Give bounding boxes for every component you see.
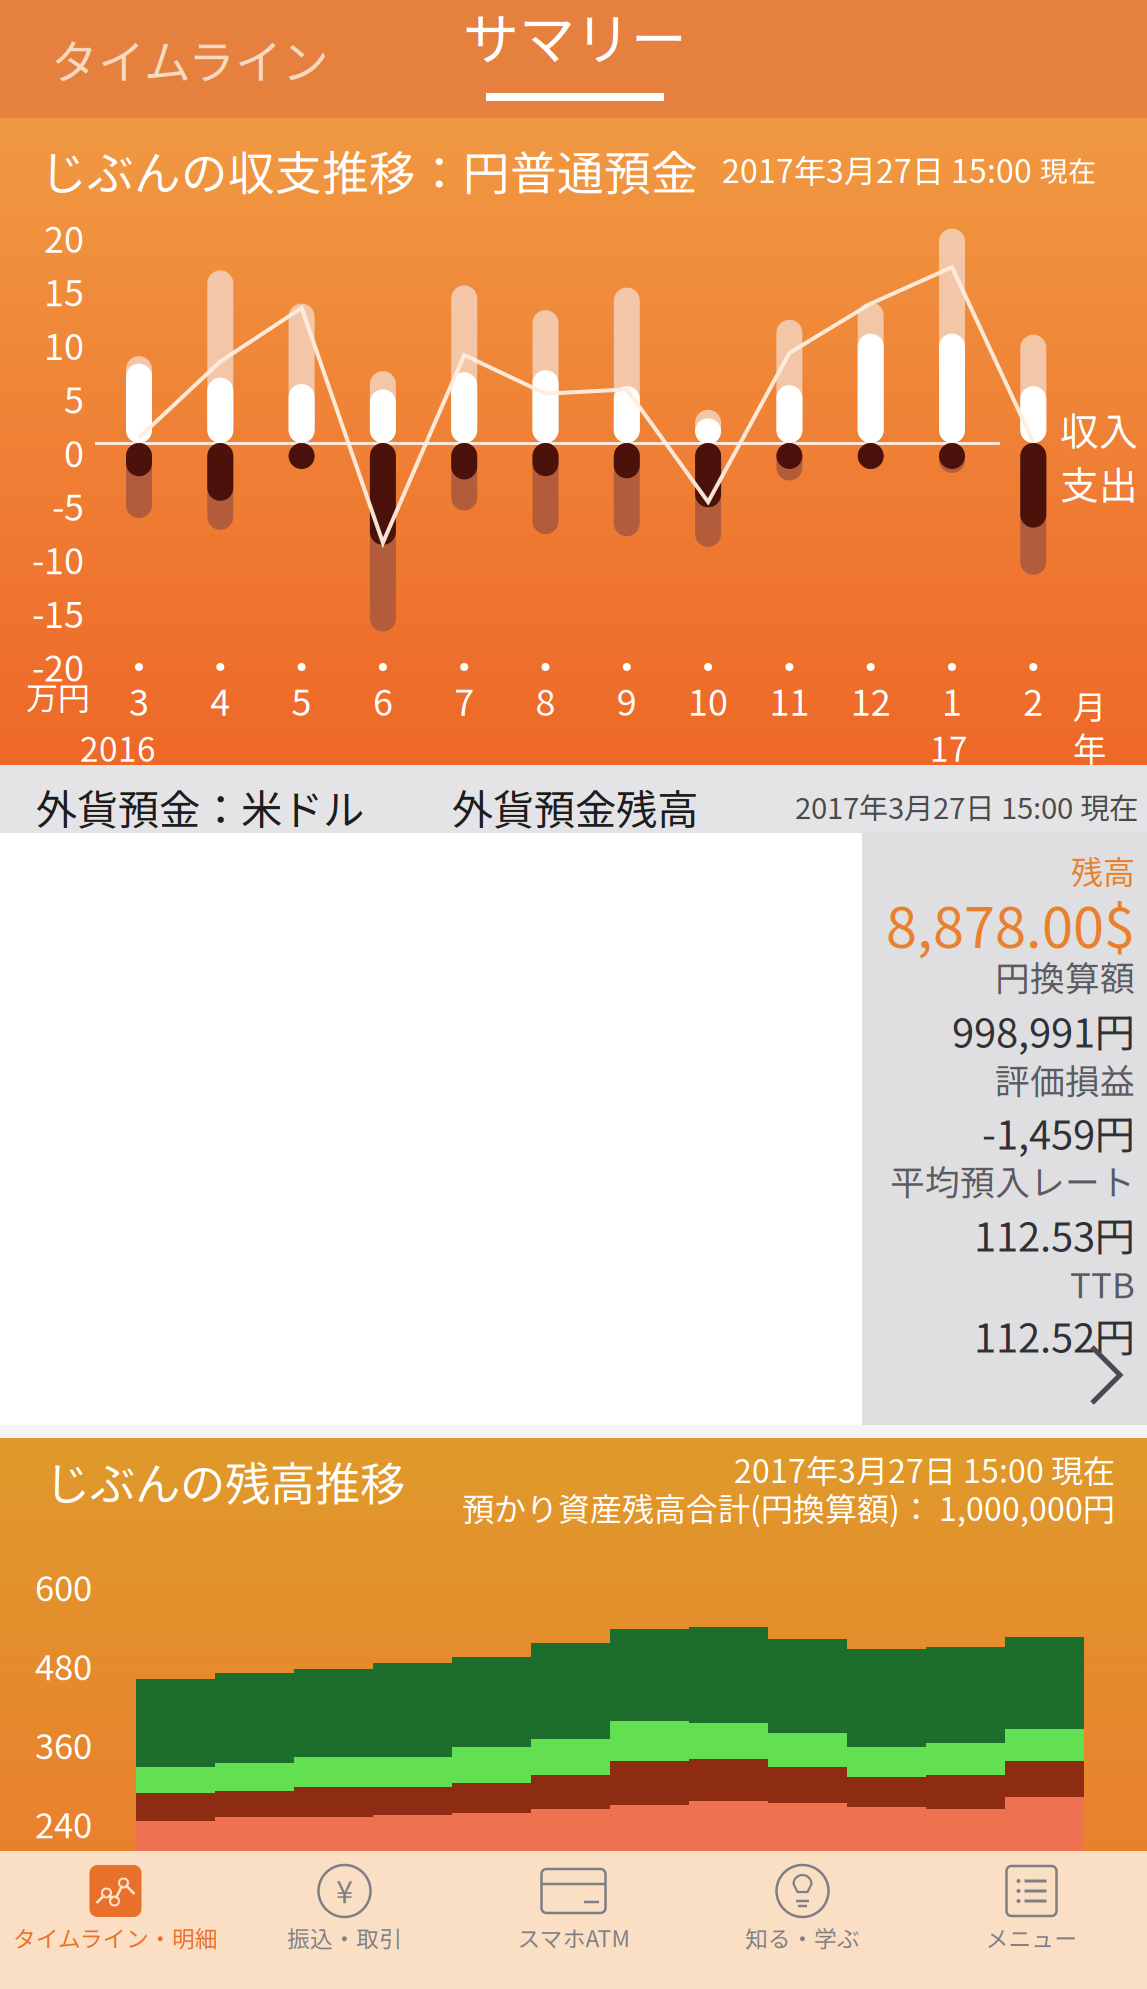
staticText: 2016 — [80, 723, 156, 771]
staticText: 1 — [942, 674, 962, 726]
button[interactable]: サマリー — [405, 0, 745, 118]
staticText: 外貨預金：米ドル — [36, 777, 364, 837]
button[interactable]: 知る・学ぶ — [688, 1851, 917, 1989]
staticText: 10 — [44, 318, 84, 370]
staticText: 12 — [851, 674, 891, 726]
staticText: 8,878.00$ — [886, 883, 1135, 964]
staticText: 2 — [1023, 674, 1043, 726]
staticText: 知る・学ぶ — [745, 1921, 860, 1954]
staticText: メニュー — [985, 1921, 1077, 1954]
button[interactable]: スマホATM — [459, 1851, 688, 1989]
staticText: 年 — [1073, 723, 1106, 771]
staticText: タイムライン・明細 — [13, 1921, 218, 1954]
staticText: 評価損益 — [995, 1054, 1135, 1104]
staticText: 月 — [1073, 681, 1106, 729]
staticText: -15 — [32, 586, 84, 638]
staticText: 平均預入レート — [890, 1155, 1135, 1205]
staticText: 5 — [292, 674, 312, 726]
staticText: -1,459円 — [982, 1103, 1135, 1161]
staticText: -20 — [32, 640, 84, 692]
staticText: 支出 — [1060, 455, 1138, 511]
staticText: 600 — [35, 1561, 92, 1611]
staticText: サマリー — [463, 0, 687, 76]
staticText: TTB — [1070, 1258, 1135, 1308]
staticText: 6 — [373, 674, 393, 726]
staticText: 20 — [44, 211, 84, 263]
staticText: 10 — [688, 674, 728, 726]
staticText: 3 — [129, 674, 149, 726]
staticText: 8 — [535, 674, 555, 726]
staticText: 17 — [930, 723, 968, 771]
staticText: じぶんの収支推移：円普通預金 — [40, 136, 698, 204]
staticText: 360 — [35, 1719, 92, 1769]
staticText: -5 — [52, 479, 84, 531]
staticText: -10 — [32, 533, 84, 585]
button[interactable]: 残高 — [862, 833, 1147, 1425]
staticText: 2017年3月27日 15:00 現在 — [795, 785, 1138, 827]
staticText: 4 — [210, 674, 230, 726]
button[interactable]: タイムライン — [0, 0, 380, 118]
staticText: 2017年3月27日 15:00 現在 — [734, 1446, 1115, 1492]
staticText: 2017年3月27日 15:00 — [722, 146, 1032, 192]
button[interactable]: メニュー — [917, 1851, 1146, 1989]
staticText: じぶんの残高推移 — [45, 1448, 405, 1514]
staticText: 0 — [64, 425, 84, 477]
staticText: 11 — [769, 674, 809, 726]
staticText: 収入 — [1060, 401, 1138, 457]
staticText: 9 — [617, 674, 637, 726]
staticText: 112.52円 — [974, 1306, 1135, 1364]
staticText: 15 — [44, 265, 84, 317]
staticText: 振込・取引 — [287, 1921, 402, 1954]
staticText: ¥ — [336, 1868, 353, 1912]
staticText: 480 — [35, 1640, 92, 1690]
staticText: タイムライン — [51, 25, 329, 93]
staticText: 5 — [64, 372, 84, 424]
staticText: 240 — [35, 1798, 92, 1848]
button[interactable]: ¥ — [230, 1851, 459, 1989]
staticText: 円換算額 — [995, 951, 1135, 1001]
staticText: 預かり資産残高合計(円換算額)： 1,000,000円 — [462, 1484, 1115, 1530]
staticText: 現在 — [1040, 149, 1096, 189]
staticText: スマホATM — [517, 1921, 629, 1954]
staticText: 998,991円 — [952, 1001, 1135, 1059]
staticText: 万円 — [26, 673, 90, 719]
button[interactable]: タイムライン・明細 — [1, 1851, 230, 1989]
staticText: 7 — [454, 674, 474, 726]
staticText: 残高 — [1071, 847, 1135, 893]
staticText: 外貨預金残高 — [452, 777, 698, 837]
staticText: 112.53円 — [974, 1205, 1135, 1263]
